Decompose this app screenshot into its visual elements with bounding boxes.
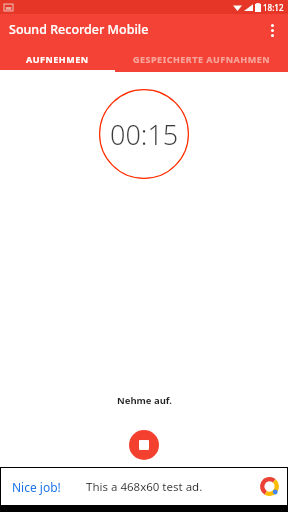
staticText: This a 468x60 test ad. — [86, 479, 203, 495]
button[interactable]: Nice job! — [1, 468, 287, 505]
staticText: 18:12 — [263, 2, 284, 13]
button[interactable]: More options — [260, 18, 284, 42]
staticText: GESPEICHERTE AUFNAHMEN — [133, 53, 271, 65]
button[interactable]: GESPEICHERTE AUFNAHMEN — [115, 45, 288, 72]
staticText: Nice job! — [12, 479, 61, 495]
staticText: AUFNEHMEN — [26, 53, 89, 65]
staticText: 00:15 — [110, 116, 179, 153]
button[interactable]: Stop recording — [129, 430, 159, 460]
staticText: Nehme auf. — [117, 394, 172, 407]
staticText: Sound Recorder Mobile — [9, 21, 149, 38]
button[interactable]: AUFNEHMEN — [0, 45, 115, 72]
